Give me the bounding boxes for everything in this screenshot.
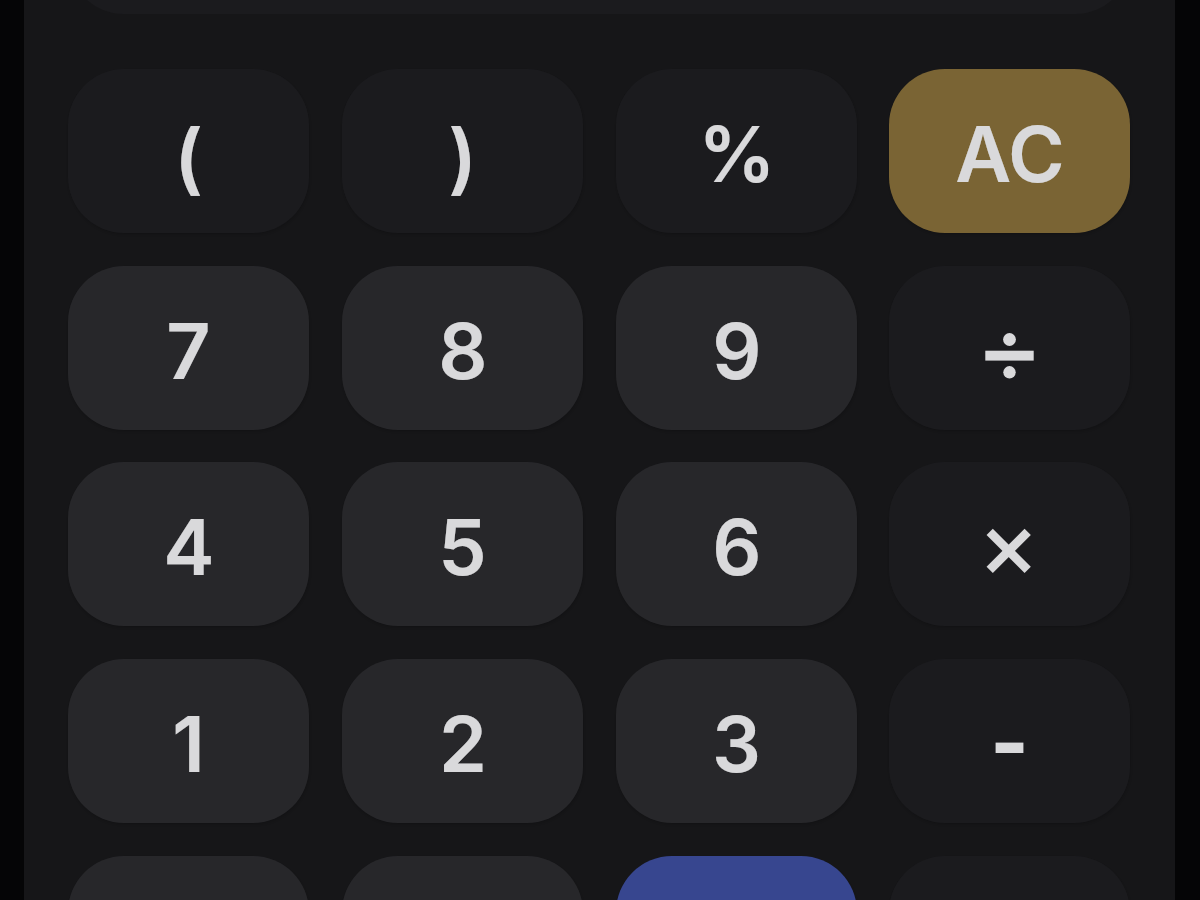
staticText: AC (955, 107, 1065, 200)
button[interactable]: Multiply (889, 462, 1130, 626)
staticText: 4 (163, 500, 215, 593)
button[interactable]: ) (342, 69, 583, 233)
button[interactable]: 0 (68, 856, 309, 900)
button[interactable]: Subtract (889, 659, 1130, 823)
button[interactable]: 3 (616, 659, 857, 823)
staticText: ) (448, 110, 477, 203)
button[interactable]: ( (68, 69, 309, 233)
staticText: 5 (438, 500, 487, 593)
button[interactable]: 2 (342, 659, 583, 823)
staticText: ( (174, 110, 203, 203)
button[interactable]: AC (889, 69, 1130, 233)
button[interactable]: 5 (342, 462, 583, 626)
button[interactable]: 1 (68, 659, 309, 823)
button[interactable]: Equals (616, 856, 857, 900)
staticText: 3 (712, 697, 761, 790)
button[interactable]: . (342, 856, 583, 900)
button[interactable]: 7 (68, 266, 309, 430)
button[interactable]: 8 (342, 266, 583, 430)
button[interactable]: 6 (616, 462, 857, 626)
staticText: 1 (172, 697, 205, 790)
button[interactable]: 9 (616, 266, 857, 430)
staticText: % (698, 107, 776, 200)
staticText: 6 (712, 500, 762, 593)
button[interactable]: 4 (68, 462, 309, 626)
staticText: 9 (712, 304, 762, 397)
staticText: 2 (439, 697, 487, 790)
button[interactable]: Divide (889, 266, 1130, 430)
button[interactable]: % (616, 69, 857, 233)
staticText: 8 (438, 304, 488, 397)
staticText: 7 (166, 304, 211, 397)
